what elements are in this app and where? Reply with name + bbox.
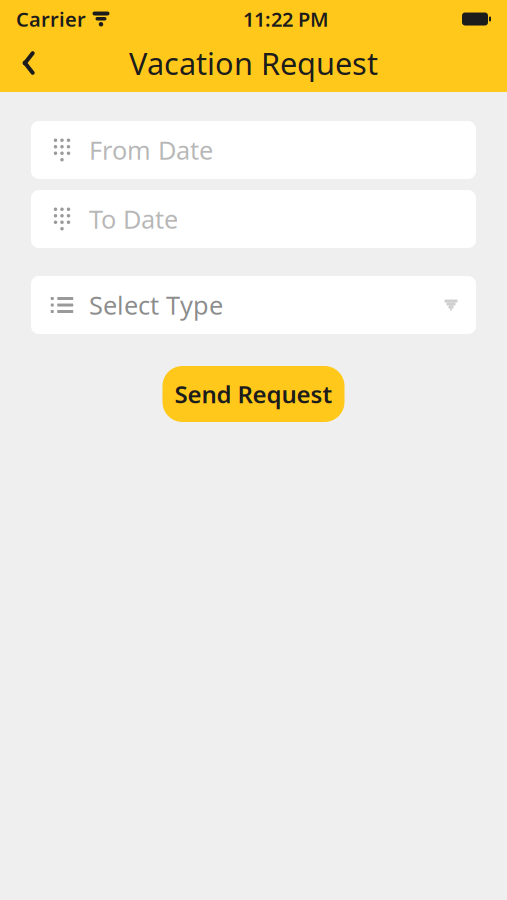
staticText: From Date — [89, 133, 213, 167]
button[interactable]: Select Type — [31, 276, 476, 334]
staticText: To Date — [89, 202, 178, 236]
staticText: Send Request — [174, 378, 332, 410]
staticText: Vacation Request — [129, 43, 378, 83]
staticText: Carrier — [16, 6, 86, 32]
staticText: Select Type — [89, 288, 223, 322]
staticText: 11:22 PM — [243, 6, 329, 32]
button[interactable]: To Date — [31, 190, 476, 248]
button[interactable]: Back — [0, 38, 50, 88]
button[interactable]: From Date — [31, 121, 476, 179]
button[interactable]: Send Request — [162, 366, 344, 422]
